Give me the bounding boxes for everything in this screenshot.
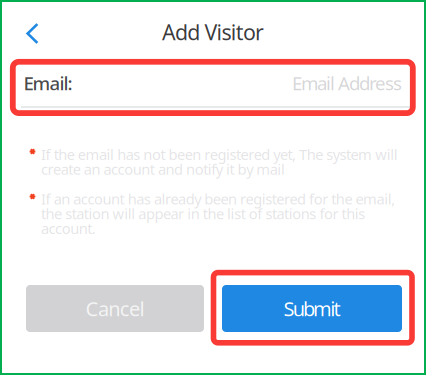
staticText: account. xyxy=(41,218,96,238)
staticText: If the email has not been registered yet… xyxy=(41,145,398,164)
staticText: If an account has already been registere… xyxy=(41,189,395,209)
staticText: Email: xyxy=(23,71,72,95)
staticText: the station will appear in the list of s… xyxy=(41,204,365,223)
staticText: Add Visitor xyxy=(162,18,264,46)
staticText: Email Address xyxy=(292,71,402,95)
button[interactable]: Back xyxy=(10,11,54,55)
staticText: create an account and notify it by mail xyxy=(41,159,285,179)
button[interactable]: Cancel xyxy=(26,285,204,332)
button[interactable]: Submit xyxy=(222,285,402,332)
staticText: Submit xyxy=(283,295,340,322)
staticText: Cancel xyxy=(85,295,144,322)
